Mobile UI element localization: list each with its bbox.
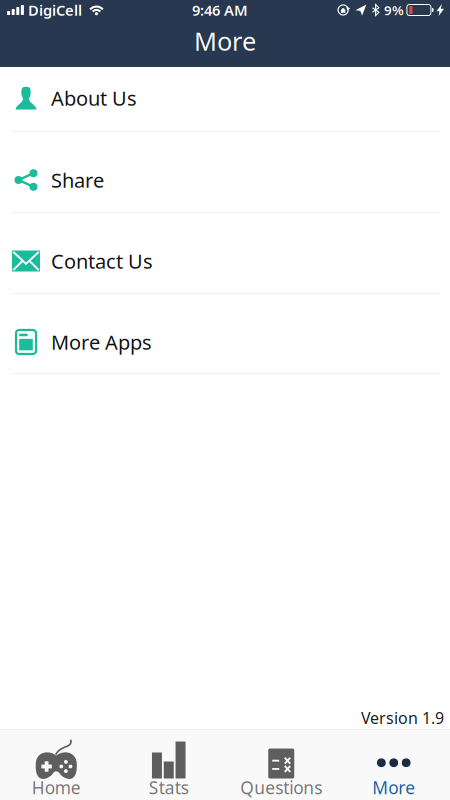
button[interactable]: Contact Us [0, 213, 450, 294]
staticText: 9:46 AM [192, 0, 248, 20]
staticText: DigiCell [28, 0, 82, 20]
button[interactable]: Home [0, 730, 112, 800]
button[interactable]: Questions [225, 730, 337, 800]
staticText: Home [32, 776, 81, 799]
staticText: 9% [384, 1, 404, 19]
staticText: Stats [149, 776, 189, 799]
button[interactable]: Stats [112, 730, 225, 800]
staticText: More Apps [51, 329, 152, 355]
staticText: Version 1.9 [361, 707, 444, 728]
staticText: More [372, 776, 415, 799]
staticText: Share [51, 167, 104, 193]
button[interactable]: About Us [0, 67, 450, 132]
button[interactable]: More [337, 730, 450, 800]
button[interactable]: Share [0, 132, 450, 213]
staticText: More [194, 24, 256, 58]
staticText: Contact Us [51, 248, 153, 274]
button[interactable]: More Apps [0, 294, 450, 374]
staticText: About Us [51, 85, 137, 111]
staticText: Questions [240, 776, 322, 799]
